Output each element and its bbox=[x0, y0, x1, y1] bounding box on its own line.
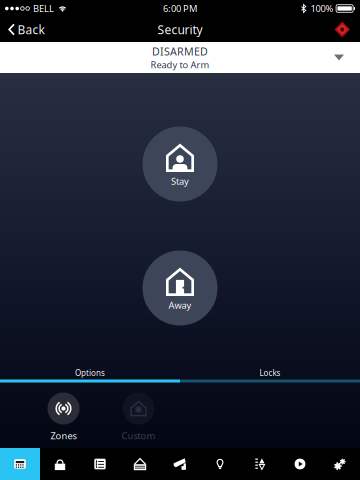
button[interactable]: Video bbox=[280, 448, 320, 480]
staticText: Options bbox=[75, 368, 105, 378]
button[interactable]: Zones bbox=[26, 392, 101, 442]
staticText: Locks bbox=[259, 368, 280, 378]
staticText: Zones bbox=[50, 429, 76, 442]
staticText: Security bbox=[157, 21, 202, 37]
button[interactable]: Locks bbox=[40, 448, 80, 480]
button[interactable]: Thermostat bbox=[240, 448, 280, 480]
staticText: Ready to Arm bbox=[150, 58, 209, 71]
button[interactable]: Cameras bbox=[160, 448, 200, 480]
button[interactable]: Settings bbox=[320, 448, 360, 480]
staticText: Away bbox=[168, 299, 191, 311]
button[interactable]: Lights bbox=[200, 448, 240, 480]
staticText: Back bbox=[17, 21, 44, 37]
button[interactable]: Panic alarm bbox=[326, 17, 358, 42]
staticText: DISARMED bbox=[152, 44, 208, 58]
button[interactable]: Locks bbox=[180, 366, 360, 379]
staticText: Stay bbox=[171, 175, 189, 187]
button[interactable]: Away bbox=[142, 250, 217, 325]
button[interactable]: Options bbox=[0, 366, 180, 379]
staticText: Custom bbox=[121, 429, 155, 442]
button[interactable]: DISARMED bbox=[0, 42, 360, 73]
button[interactable]: Stay bbox=[142, 126, 217, 201]
staticText: 6:00 PM bbox=[163, 2, 197, 15]
staticText: BELL bbox=[33, 2, 54, 15]
button[interactable]: Custom bbox=[101, 392, 176, 442]
button[interactable]: Activity bbox=[80, 448, 120, 480]
staticText: 100% bbox=[311, 2, 334, 15]
button[interactable]: Keypad bbox=[0, 448, 40, 480]
button[interactable]: Back bbox=[2, 17, 50, 42]
button[interactable]: Garage bbox=[120, 448, 160, 480]
